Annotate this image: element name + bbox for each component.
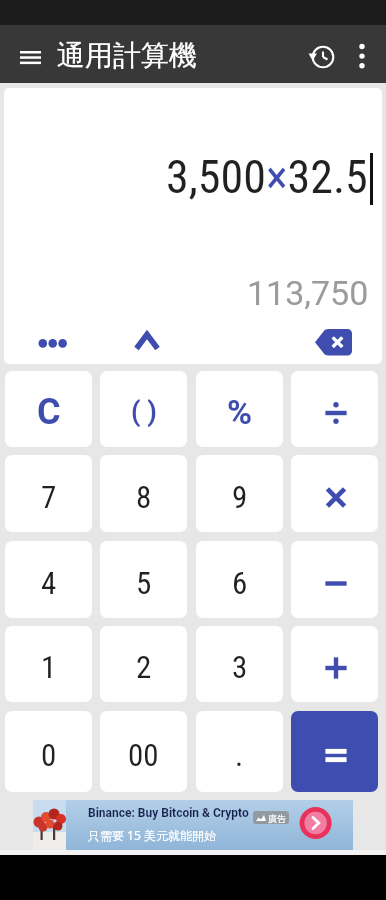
staticText: 廣告 [268, 813, 286, 824]
staticText: 通用計算機 [57, 38, 197, 73]
staticText: 4 [41, 565, 57, 601]
staticText: % [227, 392, 253, 432]
staticText: 113,750 [247, 273, 369, 313]
staticText: 3,500×32.5 [166, 150, 368, 204]
staticText: 9 [232, 479, 248, 515]
staticText: 7 [41, 479, 57, 515]
staticText: . [235, 737, 244, 773]
staticText: 3 [232, 649, 248, 685]
staticText: 2 [136, 649, 152, 685]
staticText: 只需要 15 美元就能開始 [88, 827, 216, 843]
staticText: 0 [41, 737, 57, 773]
staticText: 8 [136, 479, 152, 515]
staticText: Binance: Buy Bitcoin & Crypto [88, 806, 249, 820]
staticText: ( ) [131, 396, 157, 428]
staticText: 1 [41, 649, 57, 685]
staticText: 5 [136, 565, 152, 601]
staticText: C [37, 391, 61, 433]
staticText: 00 [128, 737, 159, 773]
staticText: 6 [232, 565, 248, 601]
